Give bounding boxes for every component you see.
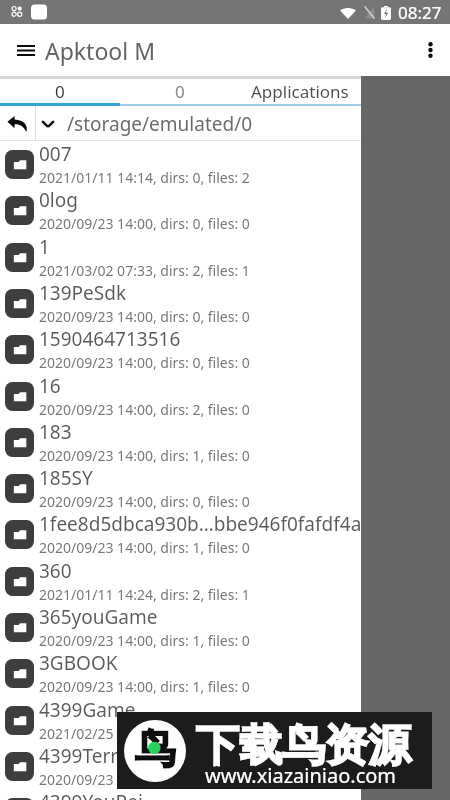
staticText: 2021/03/02 07:33, dirs: 2, files: 1 xyxy=(39,261,250,280)
staticText: 4399YouRei xyxy=(39,789,143,800)
button[interactable]: Back xyxy=(0,106,35,141)
staticText: 2021/02/25 14:00, dirs: 1, files: 0 xyxy=(39,724,250,743)
button[interactable]: 4399Terr xyxy=(0,743,450,789)
staticText: 2020/09/23 14:00, dirs: 0, files: 0 xyxy=(39,353,250,372)
staticText: 2021/01/11 14:14, dirs: 0, files: 2 xyxy=(39,168,250,187)
button[interactable]: 16 xyxy=(0,373,450,419)
button[interactable]: 0 xyxy=(120,79,240,103)
staticText: 08:27 xyxy=(398,1,442,24)
staticText: 0log xyxy=(39,187,78,213)
staticText: Applications xyxy=(251,80,349,103)
staticText: 2021/01/11 14:24, dirs: 2, files: 1 xyxy=(39,585,250,604)
staticText: 360 xyxy=(39,558,72,584)
button[interactable]: 4399YouRei xyxy=(0,789,450,800)
staticText: 2020/09/23 14:00, dirs: 1, files: 0 xyxy=(39,677,250,696)
button[interactable]: 365youGame xyxy=(0,604,450,650)
button[interactable]: 1 xyxy=(0,234,450,280)
staticText: 365youGame xyxy=(39,604,158,630)
staticText: 2020/09/23 14:00, dirs: 1, files: 0 xyxy=(39,631,250,650)
staticText: www.xiazainiao.com xyxy=(205,762,397,789)
button[interactable]: 1fee8d5dbca930b…bbe946f0fafdf4a xyxy=(0,511,450,557)
staticText: 16 xyxy=(39,373,61,399)
button[interactable]: 139PeSdk xyxy=(0,280,450,326)
staticText: 0 xyxy=(175,80,185,103)
staticText: 0 xyxy=(55,80,65,103)
staticText: 2020/09/23 14:00, dirs: 0, files: 0 xyxy=(39,307,250,326)
staticText: 4399Game xyxy=(39,697,136,723)
button[interactable]: 1590464713516 xyxy=(0,326,450,372)
staticText: 下载鸟资源 xyxy=(196,719,411,773)
staticText: 1fee8d5dbca930b…bbe946f0fafdf4a xyxy=(39,511,362,537)
button[interactable]: 007 xyxy=(0,141,450,187)
button[interactable]: 185SY xyxy=(0,465,450,511)
staticText: 2020/09/23 14:00, dirs: 0, files: 0 xyxy=(39,214,250,233)
staticText: 鸟 xyxy=(135,724,176,776)
staticText: 1 xyxy=(39,234,50,260)
staticText: 1590464713516 xyxy=(39,326,181,352)
button[interactable]: Applications xyxy=(240,79,360,103)
staticText: 2020/09/23 14:00, dirs: 1, files: 0 xyxy=(39,446,250,465)
staticText: 2020/09/23 14:00, dirs: 1, files: 0 xyxy=(39,538,250,557)
button[interactable]: More options xyxy=(412,32,448,68)
staticText: 3GBOOK xyxy=(39,650,118,676)
staticText: Apktool M xyxy=(45,35,156,66)
staticText: 2020/09/23 14:00, dirs: 2, files: 0 xyxy=(39,400,250,419)
staticText: 185SY xyxy=(39,465,93,491)
button[interactable]: 0log xyxy=(0,187,450,233)
button[interactable]: 3GBOOK xyxy=(0,650,450,696)
staticText: 4399Terr xyxy=(39,743,119,769)
button[interactable]: 4399Game xyxy=(0,697,450,743)
staticText: 2020/09/23 14:00, dirs: 1, files: 0 xyxy=(39,770,250,789)
button[interactable]: Expand path xyxy=(36,106,60,141)
button[interactable]: Menu xyxy=(8,32,44,68)
staticText: 139PeSdk xyxy=(39,280,127,306)
button[interactable]: 183 xyxy=(0,419,450,465)
staticText: /storage/emulated/0 xyxy=(67,111,253,137)
staticText: 007 xyxy=(39,141,72,167)
button[interactable]: 0 xyxy=(0,79,120,103)
staticText: 2020/09/23 14:00, dirs: 0, files: 0 xyxy=(39,492,250,511)
button[interactable]: 360 xyxy=(0,558,450,604)
staticText: 183 xyxy=(39,419,72,445)
